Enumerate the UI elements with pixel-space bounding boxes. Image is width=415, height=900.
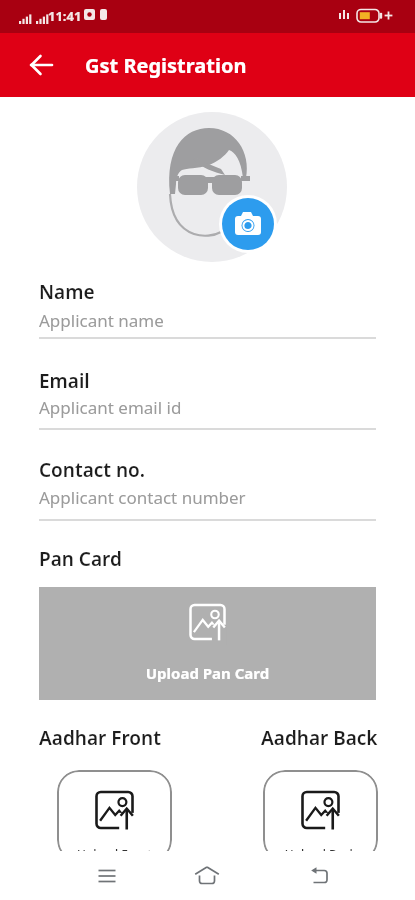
staticText: Gst Registration [85,52,247,79]
button[interactable] [85,854,129,898]
staticText: Applicant name [39,309,164,332]
staticText: Email [39,368,90,394]
button[interactable] [219,195,277,253]
button[interactable] [137,112,287,262]
button[interactable]: Upload Front [57,770,172,862]
staticText: Upload Front [57,846,172,862]
staticText: Applicant contact number [39,486,246,509]
button[interactable]: Applicant contact number [39,483,376,521]
staticText: Aadhar Front [39,725,161,751]
staticText: Name [39,279,95,305]
button[interactable] [297,854,341,898]
button[interactable] [185,854,229,898]
button[interactable]: Applicant name [39,305,376,339]
button[interactable]: Upload Back [263,770,378,862]
button[interactable] [20,43,64,87]
staticText: Pan Card [39,546,122,572]
staticText: Contact no. [39,457,146,483]
staticText: Aadhar Back [261,725,378,751]
button[interactable]: Applicant email id [39,393,376,430]
staticText: Upload Pan Card [39,663,376,683]
staticText: 11:41 [48,7,82,25]
staticText: Applicant email id [39,396,182,419]
staticText: Upload Back [263,846,378,862]
button[interactable]: Upload Pan Card [39,587,376,700]
